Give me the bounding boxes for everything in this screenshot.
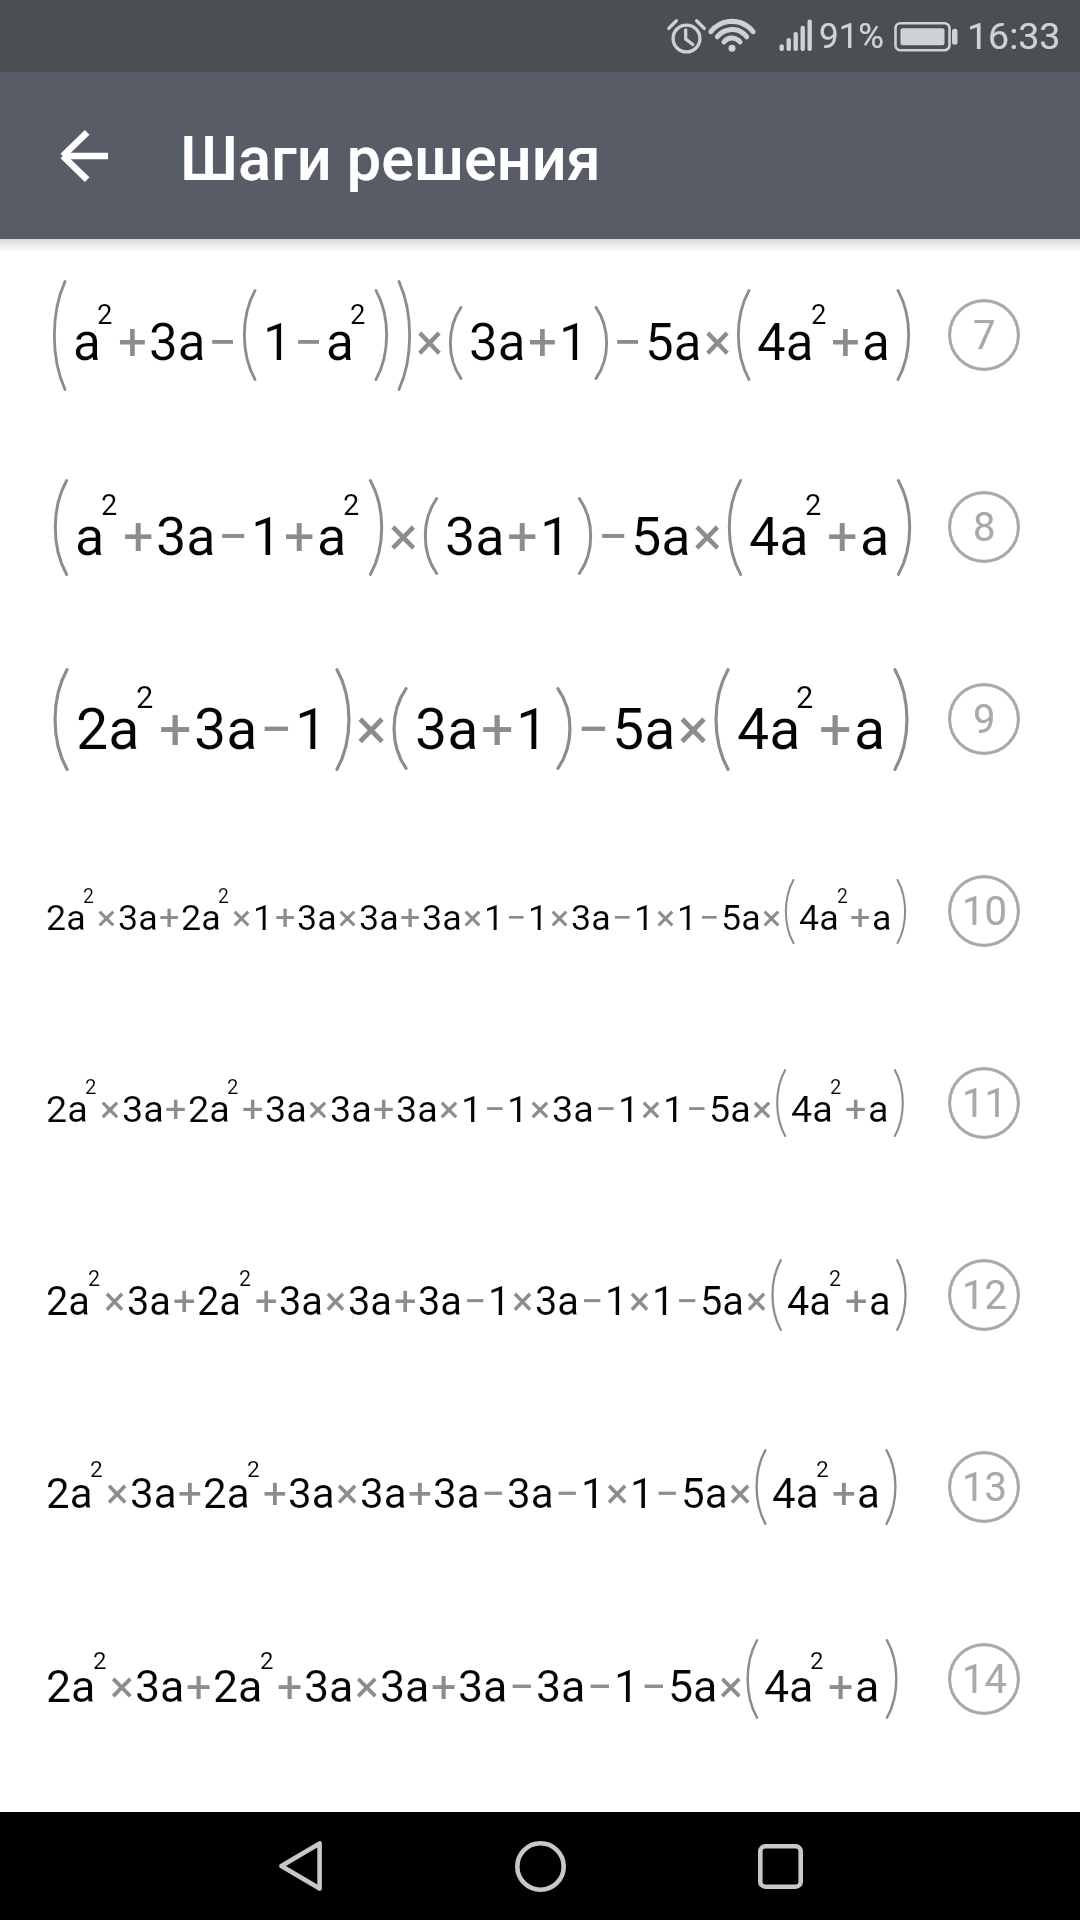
- staticText: +: [46, 1639, 75, 1698]
- staticText: 1: [618, 1087, 640, 1131]
- staticText: +: [400, 897, 421, 939]
- staticText: a: [860, 505, 890, 568]
- staticText: 1: [50, 280, 79, 339]
- staticText: −: [46, 879, 75, 938]
- staticText: ×: [336, 1469, 359, 1518]
- staticText: ×: [729, 1469, 752, 1518]
- staticText: 3a: [330, 1087, 372, 1131]
- staticText: 3a: [118, 897, 158, 939]
- staticText: 5a: [612, 696, 676, 763]
- staticText: −: [218, 505, 249, 568]
- staticText: 2: [816, 1456, 829, 1483]
- staticText: 4a: [50, 479, 106, 538]
- staticText: 3a: [46, 1069, 102, 1128]
- staticText: 3a: [46, 1449, 102, 1508]
- staticText: −: [595, 1087, 617, 1131]
- staticText: +: [123, 505, 154, 568]
- staticText: 2: [83, 885, 94, 908]
- staticText: ×: [416, 313, 444, 373]
- staticText: 3a: [46, 1449, 102, 1508]
- staticText: ×: [46, 1449, 73, 1508]
- staticText: 3a: [422, 897, 462, 939]
- staticText: 2a: [46, 1639, 102, 1698]
- button[interactable]: Home: [480, 1812, 600, 1920]
- button[interactable]: 2a: [0, 815, 1080, 1007]
- button[interactable]: a: [0, 431, 1080, 623]
- staticText: ×: [641, 1087, 662, 1131]
- button[interactable]: Back: [240, 1812, 360, 1920]
- staticText: +: [284, 505, 315, 568]
- staticText: 2: [50, 280, 66, 312]
- staticText: +: [50, 668, 79, 727]
- staticText: 1: [488, 1278, 511, 1325]
- button[interactable]: 2a: [0, 1199, 1080, 1391]
- staticText: 2a: [197, 1278, 242, 1325]
- button[interactable]: a: [0, 239, 1080, 431]
- staticText: −: [46, 1449, 75, 1508]
- button[interactable]: Back: [36, 108, 132, 204]
- staticText: +: [242, 1087, 264, 1131]
- staticText: a: [50, 479, 78, 538]
- staticText: a: [50, 280, 78, 339]
- staticText: −: [46, 1259, 75, 1318]
- staticText: +: [118, 313, 147, 373]
- staticText: −: [208, 313, 238, 373]
- staticText: 1: [46, 1449, 75, 1508]
- staticText: +: [277, 1661, 303, 1713]
- staticText: 1: [46, 879, 75, 938]
- staticText: 2a: [203, 1469, 250, 1518]
- staticText: 5a: [46, 1639, 102, 1698]
- staticText: 3a: [535, 1278, 580, 1325]
- staticText: −: [655, 1469, 680, 1518]
- staticText: 5a: [50, 479, 106, 538]
- staticText: +: [50, 479, 79, 538]
- staticText: 1: [605, 1278, 628, 1325]
- staticText: 1: [46, 1069, 75, 1128]
- staticText: 2a: [46, 897, 86, 939]
- staticText: −: [46, 1259, 75, 1318]
- staticText: −: [699, 897, 720, 939]
- staticText: −: [46, 1639, 75, 1698]
- staticText: ×: [512, 1278, 534, 1325]
- staticText: −: [577, 696, 610, 763]
- staticText: +: [46, 1449, 75, 1508]
- staticText: ×: [719, 1661, 743, 1713]
- staticText: 3a: [445, 505, 505, 568]
- staticText: 1: [253, 897, 274, 939]
- staticText: −: [50, 479, 79, 538]
- button[interactable]: Recent apps: [720, 1812, 840, 1920]
- button[interactable]: 2a: [0, 1391, 1080, 1583]
- staticText: ×: [46, 1259, 73, 1318]
- staticText: +: [373, 1087, 395, 1131]
- staticText: 1: [46, 1069, 75, 1128]
- staticText: 2: [805, 488, 822, 522]
- staticText: 1: [677, 897, 698, 939]
- staticText: −: [481, 1469, 506, 1518]
- staticText: 3a: [433, 1469, 480, 1518]
- staticText: 5a: [668, 1661, 718, 1713]
- staticText: 4a: [749, 505, 809, 568]
- staticText: 2: [50, 479, 66, 511]
- staticText: 2: [46, 1259, 62, 1291]
- staticText: +: [46, 879, 75, 938]
- staticText: a: [46, 1639, 74, 1698]
- staticText: ×: [338, 897, 358, 939]
- staticText: 2a: [46, 1639, 102, 1698]
- staticText: ×: [746, 1278, 768, 1325]
- button[interactable]: 2a: [0, 1583, 1080, 1775]
- staticText: 3a: [46, 879, 102, 938]
- staticText: 5a: [709, 1087, 751, 1131]
- staticText: 1: [46, 879, 75, 938]
- staticText: 2a: [46, 879, 102, 938]
- button[interactable]: 2a: [0, 623, 1080, 815]
- staticText: 3a: [50, 668, 106, 727]
- staticText: 1: [528, 897, 549, 939]
- staticText: a: [855, 1661, 880, 1713]
- staticText: 3a: [304, 1661, 354, 1713]
- staticText: +: [46, 1449, 75, 1508]
- button[interactable]: 2a: [0, 1007, 1080, 1199]
- staticText: 5a: [46, 879, 102, 938]
- staticText: −: [50, 280, 79, 339]
- staticText: a: [872, 897, 892, 939]
- staticText: ×: [46, 879, 73, 938]
